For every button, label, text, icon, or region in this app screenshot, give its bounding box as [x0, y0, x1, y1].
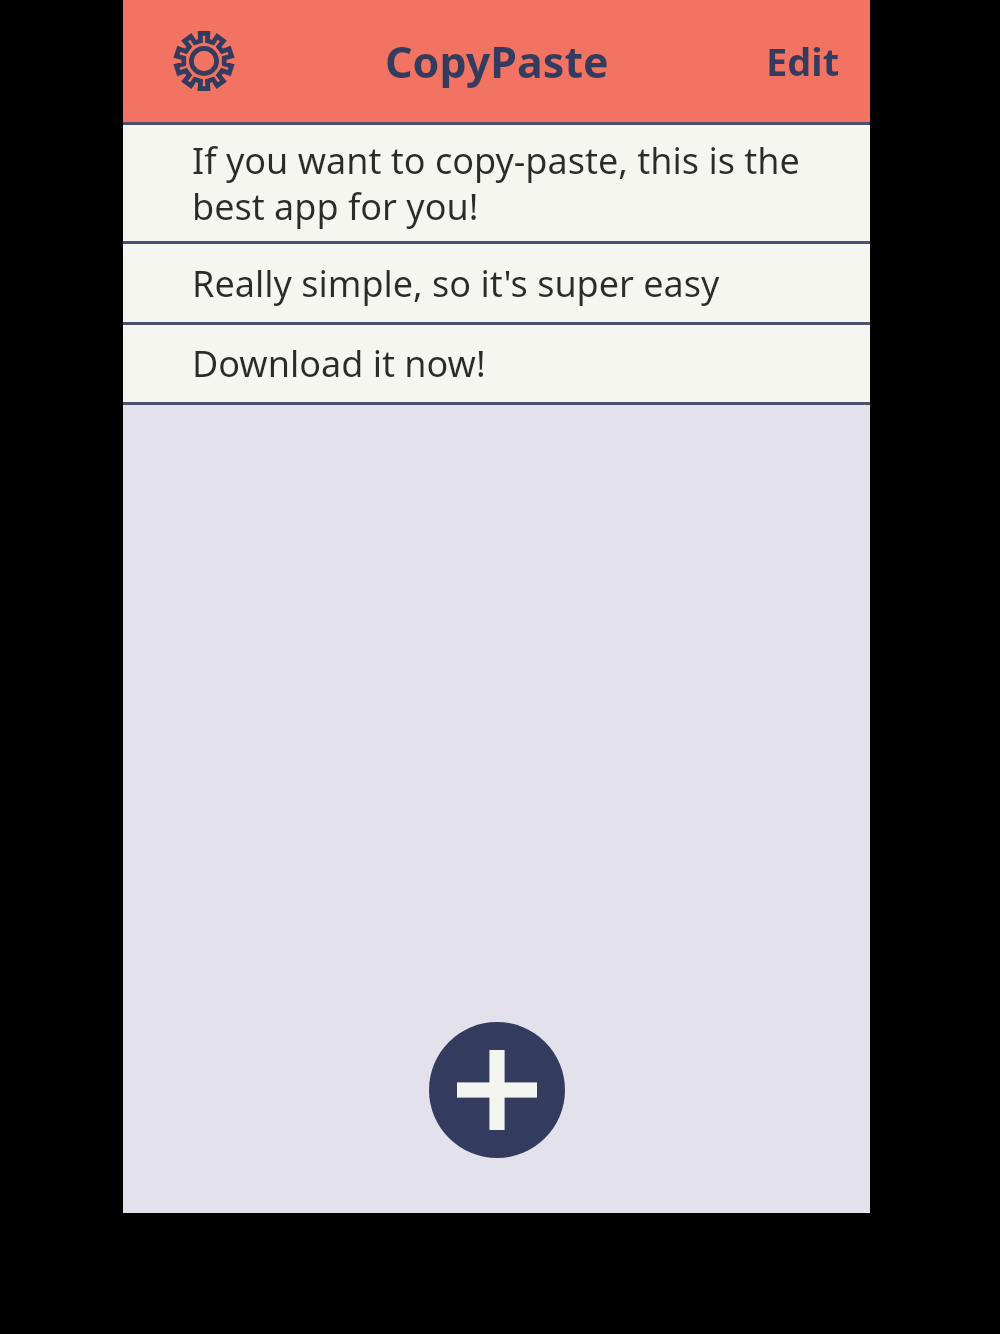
staticText: If you want to copy-paste, this is the b… — [192, 136, 840, 231]
staticText: Edit — [766, 35, 840, 87]
staticText: Really simple, so it's super easy — [192, 259, 720, 308]
button[interactable]: Edit — [736, 15, 870, 107]
button[interactable]: If you want to copy-paste, this is the b… — [123, 125, 870, 241]
staticText: Download it now! — [192, 339, 486, 388]
button[interactable]: Settings — [161, 18, 247, 104]
button[interactable]: Really simple, so it's super easy — [123, 244, 870, 322]
staticText: CopyPaste — [385, 32, 609, 91]
button[interactable]: Add — [429, 1022, 565, 1158]
button[interactable]: Download it now! — [123, 325, 870, 402]
